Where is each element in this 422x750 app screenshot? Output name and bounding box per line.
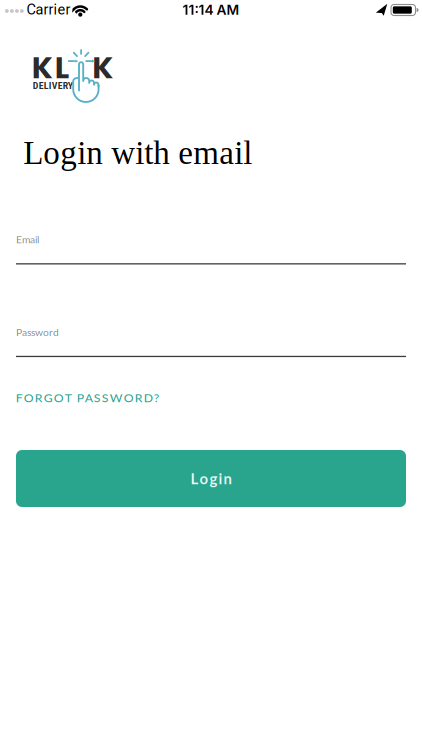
staticText: F O R G O T P A S S W O R D ?	[16, 390, 160, 405]
button[interactable]: Email	[16, 233, 406, 265]
button[interactable]: F O R G O T P A S S W O R D ?	[16, 390, 160, 405]
staticText: K L	[32, 46, 69, 89]
staticText: DELIVERY	[33, 80, 73, 91]
staticText: Email	[16, 233, 39, 245]
staticText: 11:14 AM	[182, 1, 239, 18]
staticText: Password	[16, 326, 59, 338]
staticText: Carrier	[26, 1, 70, 18]
button[interactable]: L o g i n	[16, 450, 406, 507]
staticText: K	[92, 46, 113, 89]
staticText: L o g i n	[190, 469, 231, 487]
staticText: Login with email	[23, 134, 252, 171]
button[interactable]: Password	[16, 326, 406, 358]
